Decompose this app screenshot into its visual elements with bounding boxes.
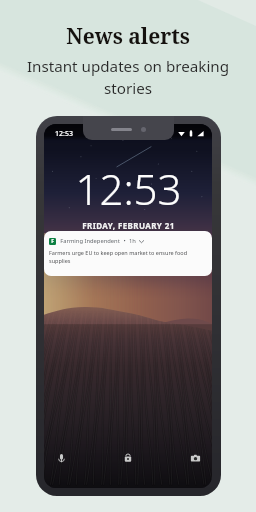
staticText: 12:53 [55,129,73,139]
staticText: FRIDAY, FEBRUARY 21 [82,220,175,231]
staticText: Farmers urge EU to keep open market to e… [49,249,207,265]
staticText: News alerts [66,22,190,51]
staticText: F [51,238,54,245]
staticText: 1h [129,237,136,245]
button[interactable]: Voice assistant [52,449,70,467]
button[interactable]: Camera [186,449,204,467]
button[interactable]: Locked [119,449,137,467]
staticText: Farming Independent [60,237,120,245]
staticText: Instant updates on breaking stories [21,56,235,98]
staticText: 12:53 [75,160,182,217]
staticText: • [123,237,126,245]
button[interactable]: F [44,231,212,276]
